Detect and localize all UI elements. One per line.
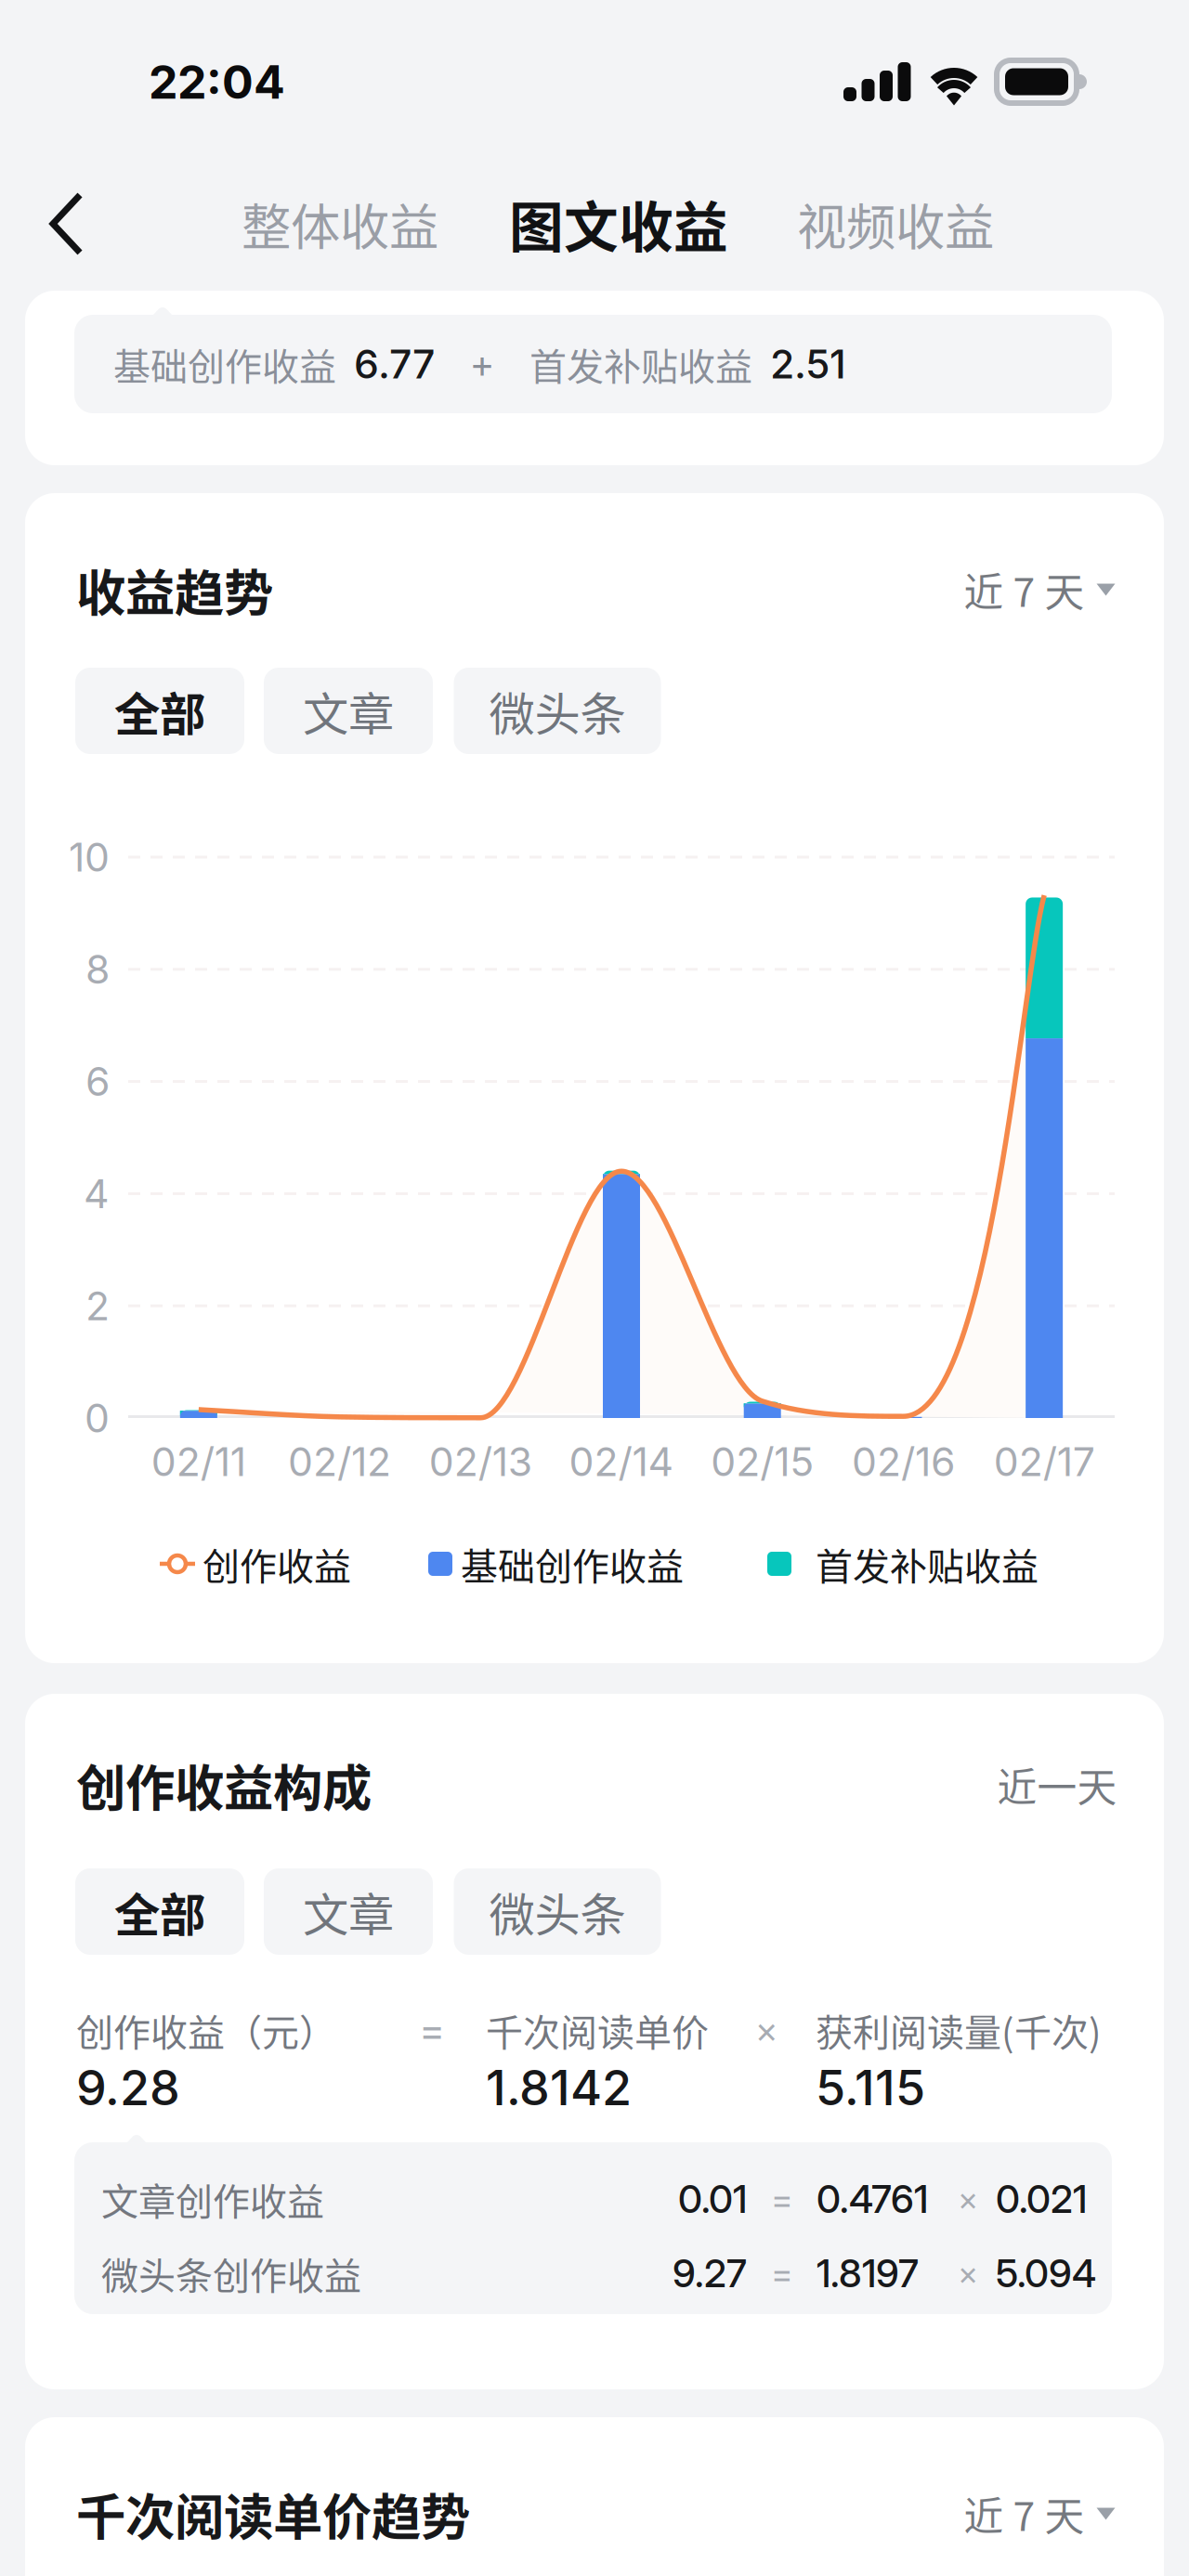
staticText: 千次阅读单价	[486, 2003, 709, 2057]
staticText: 文章创作收益	[101, 2172, 324, 2226]
button[interactable]: 文章	[264, 668, 433, 754]
staticText: 创作收益（元）	[76, 2003, 336, 2057]
staticText: 02/11	[151, 1438, 246, 1486]
staticText: ×	[958, 2179, 978, 2218]
staticText: 千次阅读单价趋势	[76, 2478, 470, 2550]
staticText: 1.8197	[817, 2250, 919, 2296]
staticText: 首发补贴收益	[529, 337, 752, 391]
staticText: 近 7 天	[964, 561, 1084, 618]
button[interactable]: 近 7 天	[964, 2481, 1115, 2546]
staticText: 0.01	[678, 2176, 747, 2222]
staticText: 02/12	[288, 1438, 391, 1486]
staticText: 近 7 天	[964, 2485, 1084, 2542]
staticText: 图文收益	[509, 184, 728, 263]
button[interactable]: 微头条	[454, 668, 661, 754]
staticText: 微头条	[489, 1878, 626, 1945]
staticText: 02/17	[994, 1438, 1095, 1486]
button[interactable]: Back	[13, 163, 121, 284]
staticText: 22:04	[149, 54, 285, 110]
staticText: =	[419, 2006, 445, 2054]
staticText: 0.021	[996, 2176, 1087, 2222]
staticText: ×	[958, 2254, 978, 2293]
staticText: 首发补贴收益	[816, 1537, 1039, 1591]
staticText: 全部	[114, 678, 205, 744]
button[interactable]: 整体收益	[219, 163, 461, 284]
button[interactable]: 全部	[75, 1868, 244, 1955]
staticText: 02/15	[711, 1438, 814, 1486]
button[interactable]: 视频收益	[775, 163, 1016, 284]
staticText: 微头条创作收益	[101, 2246, 361, 2300]
staticText: 基础创作收益	[461, 1537, 684, 1591]
staticText: 基础创作收益	[113, 337, 336, 391]
staticText: 全部	[114, 1878, 205, 1945]
button[interactable]: 近一天	[997, 1752, 1117, 1817]
button[interactable]: 近 7 天	[964, 557, 1115, 622]
staticText: 02/14	[569, 1438, 674, 1486]
staticText: 2	[85, 1282, 110, 1330]
staticText: 5.094	[996, 2250, 1096, 2296]
staticText: 8	[85, 945, 110, 993]
staticText: 整体收益	[242, 188, 438, 260]
staticText: 微头条	[489, 678, 626, 744]
staticText: 9.28	[76, 2058, 180, 2117]
button[interactable]: 文章	[264, 1868, 433, 1955]
staticText: 4	[84, 1170, 110, 1218]
staticText: ×	[755, 2008, 777, 2052]
staticText: 近一天	[997, 1756, 1117, 1814]
staticText: 文章	[303, 1878, 394, 1945]
staticText: =	[771, 2178, 793, 2220]
staticText: 2.51	[770, 340, 846, 388]
staticText: 1.8142	[486, 2058, 632, 2117]
button[interactable]: 微头条	[454, 1868, 661, 1955]
staticText: 6.77	[354, 340, 435, 388]
staticText: 创作收益	[203, 1537, 351, 1591]
staticText: 6	[85, 1058, 110, 1105]
staticText: 02/13	[429, 1438, 532, 1486]
staticText: 收益趋势	[76, 554, 273, 626]
staticText: 文章	[303, 678, 394, 744]
staticText: =	[771, 2252, 793, 2294]
staticText: +	[470, 341, 494, 387]
staticText: 9.27	[673, 2250, 747, 2296]
staticText: 获利阅读量(千次)	[816, 2003, 1102, 2057]
staticText: 5.115	[816, 2058, 925, 2117]
staticText: 0	[85, 1394, 110, 1442]
staticText: 0.4761	[817, 2176, 928, 2222]
button[interactable]: 图文收益	[493, 163, 744, 284]
staticText: 创作收益构成	[76, 1749, 372, 1821]
button[interactable]: 全部	[75, 668, 244, 754]
staticText: 02/16	[852, 1438, 955, 1486]
staticText: 视频收益	[797, 188, 994, 260]
staticText: 10	[69, 833, 110, 881]
